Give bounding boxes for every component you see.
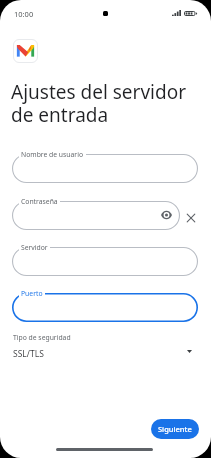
staticText: Nombre de usuario (21, 150, 84, 159)
staticText: Ajustes del servidor de entrada (11, 79, 186, 128)
button[interactable]: Tipo de seguridad (0, 330, 211, 362)
button[interactable] (12, 154, 198, 183)
button[interactable]: Borrar (184, 211, 198, 225)
button[interactable] (12, 247, 198, 276)
button[interactable] (12, 293, 198, 322)
staticText: Tipo de seguridad (13, 333, 71, 342)
button[interactable]: Mostrar contraseña (12, 201, 180, 230)
staticText: Puerto (21, 289, 43, 298)
staticText: Contraseña (21, 197, 58, 206)
button[interactable]: Mostrar contraseña (158, 207, 174, 223)
staticText: 10:00 (14, 9, 34, 19)
staticText: SSL/TLS (13, 348, 44, 360)
staticText: Servidor (21, 243, 48, 252)
button[interactable]: Siguiente (151, 419, 199, 439)
staticText: Siguiente (158, 424, 192, 434)
